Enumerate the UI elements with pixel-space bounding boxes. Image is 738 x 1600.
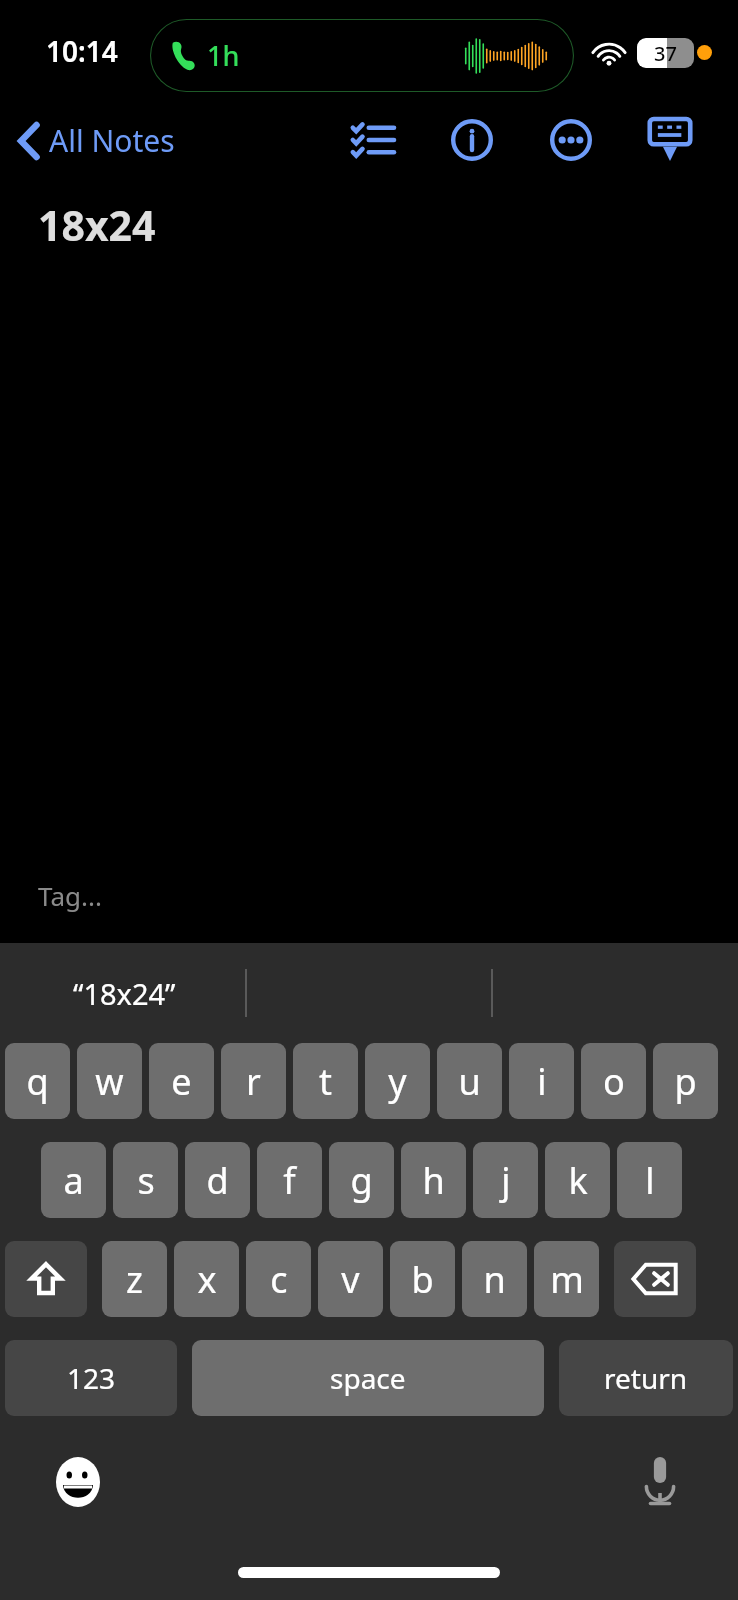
button[interactable]: h [401, 1142, 466, 1218]
staticText: y [388, 1057, 407, 1106]
button[interactable]: b [390, 1241, 455, 1317]
button[interactable]: g [329, 1142, 394, 1218]
staticText: e [171, 1057, 192, 1106]
staticText: k [568, 1156, 588, 1205]
button[interactable]: Delete [614, 1241, 696, 1317]
button[interactable]: Shift [5, 1241, 87, 1317]
staticText: space [330, 1359, 406, 1397]
staticText: l [645, 1156, 655, 1205]
button[interactable]: m [534, 1241, 599, 1317]
staticText: u [458, 1057, 481, 1106]
staticText: j [501, 1156, 511, 1205]
staticText: w [95, 1057, 124, 1106]
button[interactable]: u [437, 1043, 502, 1119]
button[interactable]: Info [444, 112, 500, 168]
button[interactable]: d [185, 1142, 250, 1218]
button[interactable]: j [473, 1142, 538, 1218]
staticText: 1h [207, 37, 240, 74]
button[interactable]: f [257, 1142, 322, 1218]
staticText: i [537, 1057, 547, 1106]
button[interactable]: n [462, 1241, 527, 1317]
button[interactable]: 1h [150, 19, 574, 92]
button[interactable]: i [509, 1043, 574, 1119]
button[interactable]: More [543, 112, 599, 168]
staticText: h [422, 1156, 445, 1205]
button[interactable]: v [318, 1241, 383, 1317]
button[interactable]: t [293, 1043, 358, 1119]
button[interactable]: s [113, 1142, 178, 1218]
staticText: All Notes [49, 120, 175, 161]
staticText: a [63, 1156, 84, 1205]
staticText: f [283, 1156, 296, 1205]
staticText: return [604, 1359, 688, 1397]
button[interactable]: l [617, 1142, 682, 1218]
staticText: v [341, 1255, 360, 1304]
staticText: r [246, 1057, 261, 1106]
button[interactable]: space [192, 1340, 544, 1416]
button[interactable]: x [174, 1241, 239, 1317]
staticText: n [483, 1255, 506, 1304]
button[interactable]: a [41, 1142, 106, 1218]
button[interactable]: c [246, 1241, 311, 1317]
staticText: b [411, 1255, 434, 1304]
button[interactable]: 123 [5, 1340, 177, 1416]
staticText: q [26, 1057, 49, 1106]
staticText: g [350, 1156, 373, 1205]
button[interactable]: Tag... [38, 878, 102, 913]
button[interactable]: z [102, 1241, 167, 1317]
button[interactable]: Hide Keyboard [642, 112, 698, 168]
button[interactable]: Emoji [50, 1454, 106, 1510]
staticText: s [137, 1156, 155, 1205]
button[interactable]: y [365, 1043, 430, 1119]
button[interactable]: All Notes [14, 114, 181, 167]
staticText: m [550, 1255, 584, 1304]
button[interactable]: “18x24” [73, 974, 176, 1013]
button[interactable]: p [653, 1043, 718, 1119]
button[interactable]: q [5, 1043, 70, 1119]
button[interactable]: Checklist [345, 112, 401, 168]
staticText: p [674, 1057, 697, 1106]
staticText: t [319, 1057, 332, 1106]
button[interactable]: e [149, 1043, 214, 1119]
staticText: d [206, 1156, 229, 1205]
staticText: 10:14 [46, 32, 118, 70]
staticText: 37 [654, 40, 677, 67]
button[interactable]: k [545, 1142, 610, 1218]
staticText: 123 [67, 1359, 116, 1397]
button[interactable]: o [581, 1043, 646, 1119]
staticText: c [270, 1255, 288, 1304]
staticText: o [603, 1057, 625, 1106]
staticText: x [197, 1255, 217, 1304]
button[interactable]: w [77, 1043, 142, 1119]
staticText: z [126, 1255, 143, 1304]
button[interactable]: return [559, 1340, 733, 1416]
button[interactable]: Dictation [632, 1454, 688, 1510]
button[interactable]: r [221, 1043, 286, 1119]
staticText: 18x24 [38, 197, 156, 253]
